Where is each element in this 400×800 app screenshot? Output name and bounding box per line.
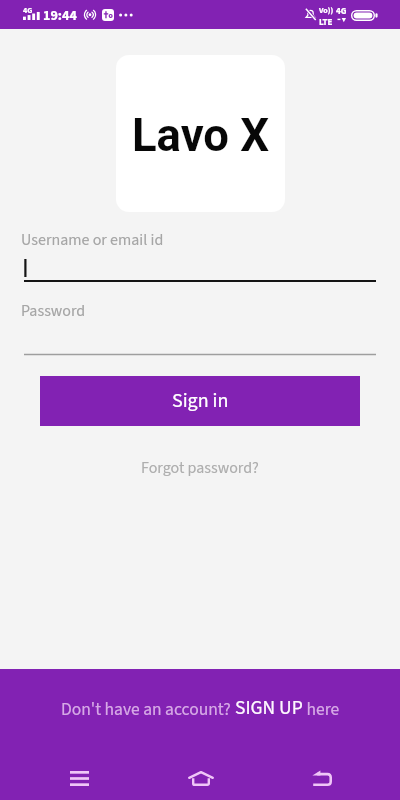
staticText: SIGN UP (235, 694, 303, 722)
staticText: 4G (336, 5, 347, 18)
button[interactable]: Username or email id field (24, 256, 376, 284)
staticText: Vo)) (319, 5, 334, 16)
button[interactable]: Home (174, 759, 227, 797)
button[interactable]: Sign in (40, 376, 360, 426)
staticText: 4G (23, 5, 33, 16)
staticText: 19:44 (43, 6, 77, 26)
staticText: Username or email id (21, 229, 164, 252)
staticText: LTE (319, 16, 333, 29)
button[interactable]: Recent apps (53, 759, 105, 797)
staticText: Sign in (172, 387, 229, 415)
staticText: Don't have an account? (61, 697, 235, 722)
staticText: Lavo X (132, 109, 270, 162)
button[interactable]: Back (296, 759, 348, 797)
button[interactable]: Password field (24, 344, 376, 364)
staticText: here (303, 697, 340, 722)
staticText: Password (21, 300, 86, 323)
button[interactable]: Forgot password? (131, 452, 269, 485)
button[interactable]: Don't have an account? (0, 669, 400, 748)
